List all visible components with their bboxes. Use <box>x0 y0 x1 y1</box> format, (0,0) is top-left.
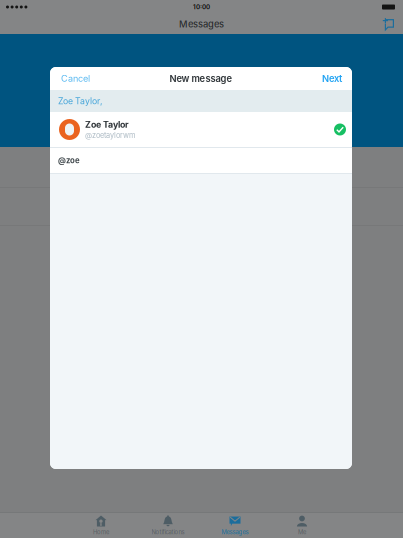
button[interactable]: Messages <box>201 511 268 537</box>
button[interactable]: Me <box>268 511 335 537</box>
staticText: Messages <box>221 528 248 536</box>
staticText: Next <box>322 73 342 84</box>
button[interactable]: Home <box>67 511 134 537</box>
staticText: Zoe Taylor <box>85 119 129 130</box>
staticText: Zoe Taylor, <box>58 96 102 106</box>
staticText: @zoe <box>58 156 80 165</box>
button[interactable]: Notifications <box>134 511 201 537</box>
button[interactable]: @zoe <box>50 148 352 173</box>
staticText: Cancel <box>61 73 90 84</box>
button[interactable]: New message <box>373 14 403 34</box>
staticText: Me <box>298 528 306 536</box>
button[interactable]: Cancel <box>50 67 99 90</box>
staticText: Notifications <box>151 528 184 536</box>
staticText: New message <box>169 73 232 84</box>
staticText: Messages <box>179 18 224 30</box>
button[interactable]: Zoe Taylor <box>50 112 352 147</box>
staticText: @zoetaylorwm <box>85 131 135 140</box>
button[interactable]: Next <box>313 67 352 90</box>
staticText: 10:00 <box>193 3 210 11</box>
staticText: Home <box>93 528 109 536</box>
